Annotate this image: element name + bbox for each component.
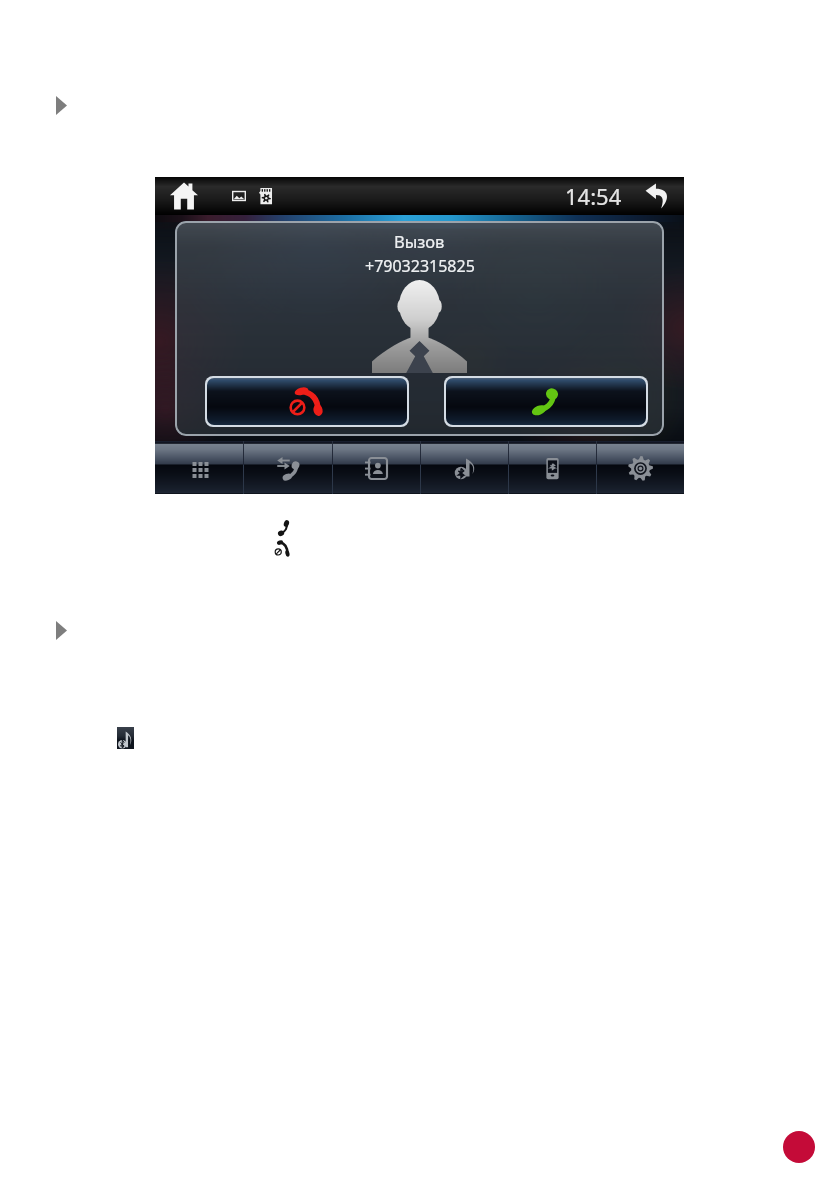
staticText: 14:54 — [565, 181, 622, 211]
button[interactable]: Call log — [244, 441, 332, 494]
staticText: Вызов — [394, 230, 445, 252]
button[interactable]: Expand — [56, 621, 67, 640]
button[interactable]: Expand — [56, 96, 67, 115]
button[interactable]: Home — [170, 182, 198, 210]
button[interactable]: Device — [509, 441, 596, 494]
button[interactable]: Dialpad — [155, 441, 243, 494]
button[interactable]: Settings — [597, 441, 684, 494]
button[interactable]: Back — [644, 183, 670, 209]
staticText: +79032315825 — [365, 255, 475, 277]
button[interactable]: Record — [783, 1131, 815, 1163]
button[interactable]: Answer call — [446, 378, 646, 425]
button[interactable]: Reject call — [207, 378, 407, 425]
button[interactable]: Contacts — [333, 441, 420, 494]
button[interactable]: Bluetooth music — [421, 441, 508, 494]
